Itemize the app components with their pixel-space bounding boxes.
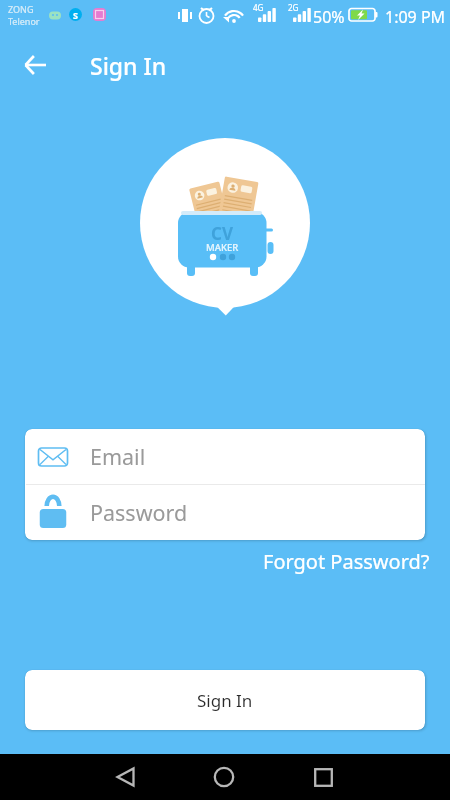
button[interactable]: Back xyxy=(11,41,59,89)
staticText: Forgot Password? xyxy=(263,548,430,575)
staticText: 4G xyxy=(253,2,264,13)
staticText: 50% xyxy=(313,6,345,28)
staticText: 2G xyxy=(288,2,299,13)
staticText: Password xyxy=(90,498,188,527)
button[interactable]: Password xyxy=(25,485,425,540)
button[interactable]: Back xyxy=(102,754,148,800)
staticText: CV xyxy=(211,222,233,245)
staticText: Sign In xyxy=(197,689,253,712)
staticText: Sign In xyxy=(90,50,167,81)
staticText: MAKER xyxy=(206,241,239,254)
button[interactable]: Sign In xyxy=(25,670,425,730)
staticText: ZONG xyxy=(8,3,34,15)
staticText: Email xyxy=(90,442,146,471)
button[interactable]: Recent apps xyxy=(300,754,346,800)
staticText: S xyxy=(73,9,78,21)
button[interactable]: Home xyxy=(201,754,247,800)
staticText: 1:09 PM xyxy=(385,6,446,28)
button[interactable]: Forgot Password? xyxy=(257,542,436,581)
button[interactable]: Email xyxy=(25,429,425,484)
staticText: Telenor xyxy=(8,15,40,27)
